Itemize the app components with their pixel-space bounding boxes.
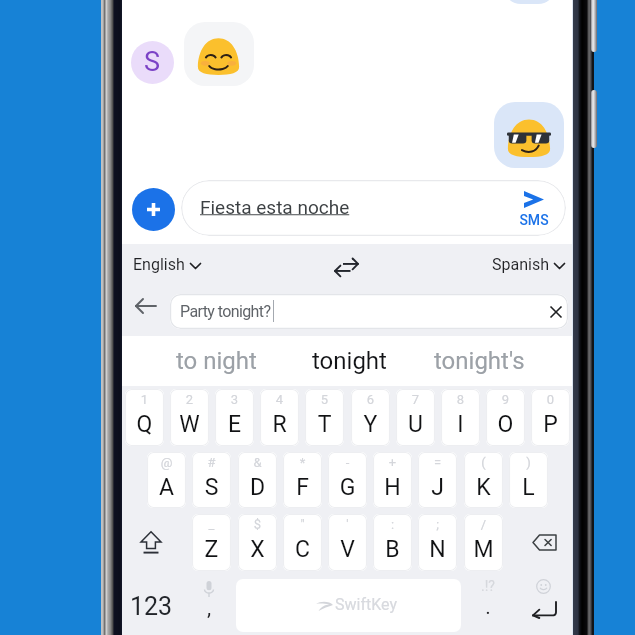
staticText: C	[283, 536, 322, 563]
button[interactable]: Clear text	[543, 299, 568, 324]
button[interactable]: "	[283, 514, 322, 571]
button[interactable]: )	[509, 452, 548, 508]
staticText: &	[238, 455, 277, 470]
button[interactable]: =	[418, 452, 457, 508]
staticText: S	[144, 46, 161, 78]
button[interactable]: Add attachment	[132, 188, 175, 231]
button[interactable]: 1	[125, 389, 164, 446]
button[interactable]: Send SMS	[515, 188, 555, 230]
button[interactable]: to night	[160, 336, 272, 386]
button[interactable]: 2	[170, 389, 209, 446]
button[interactable]: 6	[351, 389, 390, 446]
button[interactable]: /	[464, 514, 503, 571]
staticText: (	[464, 455, 503, 470]
button[interactable]: Contact avatar S	[131, 41, 174, 84]
button[interactable]: Party tonight?	[170, 294, 568, 329]
staticText: B	[373, 536, 412, 563]
button[interactable]: :	[373, 514, 412, 571]
staticText: H	[373, 474, 412, 501]
staticText: U	[396, 411, 435, 438]
button[interactable]: 123	[126, 579, 176, 632]
staticText: +	[373, 455, 412, 470]
button[interactable]: ;	[418, 514, 457, 571]
staticText: "	[283, 517, 322, 532]
button[interactable]: tonight's	[423, 336, 535, 386]
button[interactable]: 8	[441, 389, 480, 446]
button[interactable]: _	[192, 514, 231, 571]
button[interactable]: @	[147, 452, 186, 508]
staticText: 6	[351, 392, 390, 407]
staticText: 0	[531, 392, 570, 407]
staticText: tonight	[312, 347, 387, 375]
button[interactable]: 0	[531, 389, 570, 446]
staticText: to night	[176, 347, 257, 375]
staticText: D	[238, 474, 277, 501]
button[interactable]: Spanish	[487, 246, 567, 286]
staticText: V	[328, 536, 367, 563]
button[interactable]: Backspace	[524, 514, 564, 571]
staticText: X	[238, 536, 277, 563]
staticText: P	[531, 411, 570, 438]
staticText: )	[509, 455, 548, 470]
button[interactable]: $	[238, 514, 277, 571]
button[interactable]: Shift	[131, 514, 171, 571]
button[interactable]: Enter	[522, 577, 564, 632]
staticText: =	[418, 455, 457, 470]
staticText: S	[192, 474, 231, 501]
button[interactable]: English	[128, 246, 203, 286]
button[interactable]: Swap languages	[328, 250, 365, 283]
staticText: R	[260, 411, 299, 438]
button[interactable]: &	[238, 452, 277, 508]
staticText: SMS	[515, 212, 553, 228]
staticText: ;	[418, 517, 457, 532]
button[interactable]: *	[283, 452, 322, 508]
button[interactable]: Comma and voice input	[188, 577, 230, 632]
staticText: :	[373, 517, 412, 532]
staticText: I	[441, 411, 480, 438]
staticText: .!?	[467, 578, 509, 594]
staticText: 123	[130, 592, 173, 621]
staticText: 1	[125, 392, 164, 407]
button[interactable]: 7	[396, 389, 435, 446]
button[interactable]: Fiesta esta noche	[181, 180, 566, 236]
staticText: #	[192, 455, 231, 470]
button[interactable]: tonight	[292, 336, 406, 386]
button[interactable]: Space	[236, 579, 461, 632]
button[interactable]: Period and punctuation	[467, 577, 509, 632]
staticText: 4	[260, 392, 299, 407]
button[interactable]: #	[192, 452, 231, 508]
staticText: -	[328, 455, 367, 470]
button[interactable]: Sunglasses emoji message	[494, 102, 564, 168]
staticText: Spanish	[492, 255, 549, 274]
button[interactable]: 5	[305, 389, 344, 446]
button[interactable]: 9	[486, 389, 525, 446]
staticText: 3	[215, 392, 254, 407]
button[interactable]: 4	[260, 389, 299, 446]
staticText: Party tonight?	[180, 302, 271, 321]
staticText: Z	[192, 536, 231, 563]
button[interactable]: Back	[130, 290, 162, 322]
staticText: L	[509, 474, 548, 501]
button[interactable]: (	[464, 452, 503, 508]
button[interactable]: -	[328, 452, 367, 508]
staticText: .	[467, 595, 509, 620]
staticText: G	[328, 474, 367, 501]
button[interactable]: 3	[215, 389, 254, 446]
staticText: 2	[170, 392, 209, 407]
button[interactable]: +	[373, 452, 412, 508]
staticText: @	[147, 455, 186, 470]
staticText: Y	[351, 411, 390, 438]
staticText: Fiesta esta noche	[200, 196, 350, 218]
button[interactable]: Smiling emoji message	[184, 22, 254, 86]
button[interactable]: '	[328, 514, 367, 571]
staticText: tonight's	[434, 347, 525, 375]
staticText: M	[464, 536, 503, 563]
staticText: E	[215, 411, 254, 438]
staticText: *	[283, 455, 322, 470]
staticText: J	[418, 474, 457, 501]
staticText: $	[238, 517, 277, 532]
staticText: /	[464, 517, 503, 532]
staticText: F	[283, 474, 322, 501]
staticText: 5	[305, 392, 344, 407]
staticText: W	[170, 411, 209, 438]
